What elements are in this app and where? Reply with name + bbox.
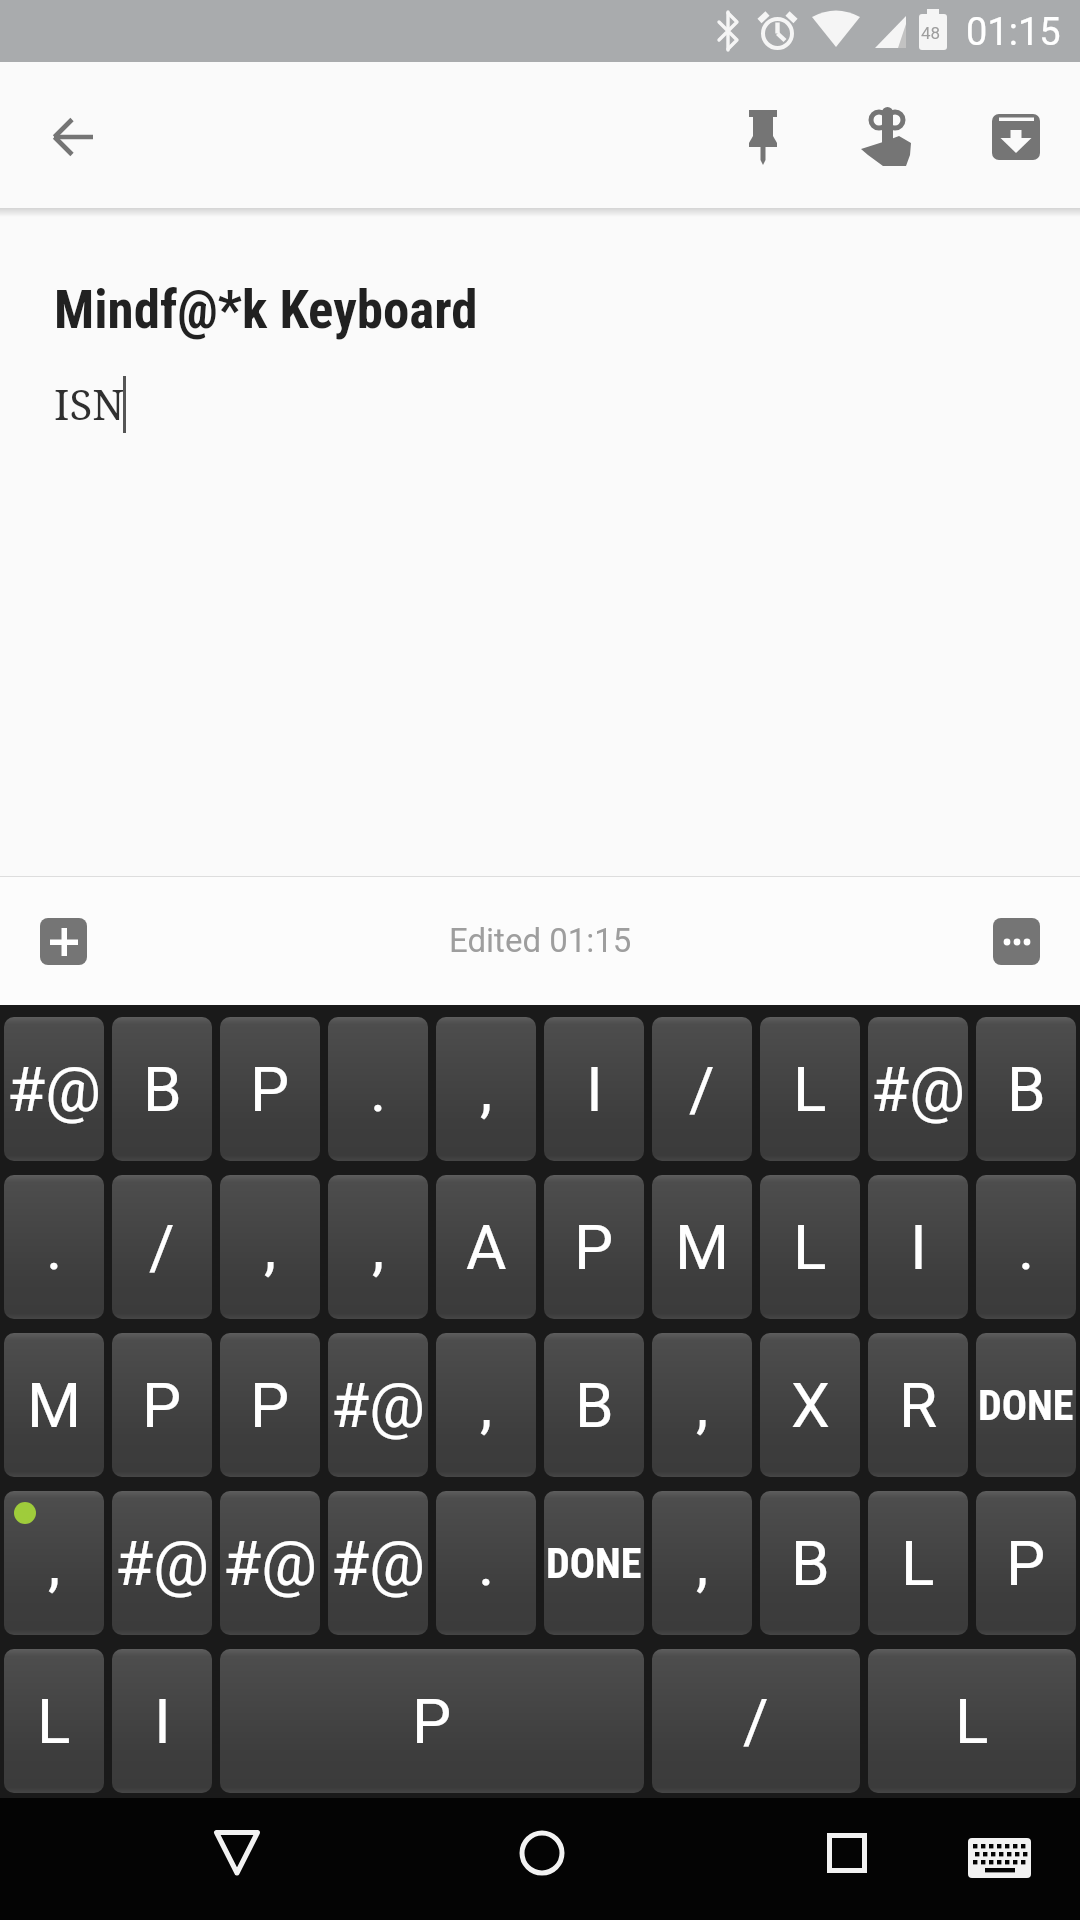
staticText: ,	[696, 1369, 709, 1442]
staticText: P	[574, 1211, 614, 1284]
button[interactable]: L	[760, 1175, 860, 1319]
staticText: L	[901, 1527, 935, 1600]
button[interactable]: P	[220, 1649, 644, 1793]
button[interactable]: L	[760, 1017, 860, 1161]
button[interactable]: ,	[652, 1333, 752, 1477]
button[interactable]: .	[4, 1175, 104, 1319]
staticText: .	[46, 1211, 63, 1284]
button[interactable]: DONE	[544, 1491, 644, 1635]
staticText: B	[1007, 1053, 1046, 1126]
staticText: #@	[7, 1053, 101, 1126]
staticText: B	[791, 1527, 830, 1600]
staticText: #@	[331, 1369, 425, 1442]
staticText: L	[793, 1211, 827, 1284]
button[interactable]: X	[760, 1333, 860, 1477]
button[interactable]	[26, 89, 122, 185]
button[interactable]: I	[544, 1017, 644, 1161]
staticText: Edited 01:15	[449, 921, 632, 960]
button[interactable]: #@	[328, 1491, 428, 1635]
staticText: .	[478, 1527, 495, 1600]
staticText: P	[142, 1369, 182, 1442]
button[interactable]: P	[220, 1333, 320, 1477]
staticText: B	[575, 1369, 614, 1442]
button[interactable]: P	[976, 1491, 1076, 1635]
button[interactable]: ,	[436, 1333, 536, 1477]
button[interactable]: .	[976, 1175, 1076, 1319]
staticText: 48	[921, 23, 941, 43]
staticText: B	[143, 1053, 182, 1126]
button[interactable]: #@	[220, 1491, 320, 1635]
button[interactable]: P	[220, 1017, 320, 1161]
button[interactable]: ,	[436, 1017, 536, 1161]
button[interactable]: #@	[868, 1017, 968, 1161]
staticText: Mindf@*k Keyboard	[54, 279, 478, 341]
button[interactable]: I	[112, 1649, 212, 1793]
staticText: ,	[48, 1527, 61, 1600]
button[interactable]: #@	[328, 1333, 428, 1477]
staticText: DONE	[546, 1539, 642, 1588]
button[interactable]: M	[652, 1175, 752, 1319]
staticText: P	[1006, 1527, 1046, 1600]
button[interactable]: I	[868, 1175, 968, 1319]
staticText: I	[154, 1685, 171, 1758]
button[interactable]	[993, 918, 1040, 965]
button[interactable]: M	[4, 1333, 104, 1477]
button[interactable]: B	[976, 1017, 1076, 1161]
button[interactable]: ,	[220, 1175, 320, 1319]
button[interactable]: A	[436, 1175, 536, 1319]
staticText: #@	[115, 1527, 209, 1600]
button[interactable]	[840, 89, 936, 185]
staticText: /	[149, 1211, 175, 1284]
staticText: DONE	[978, 1381, 1074, 1430]
button[interactable]: L	[4, 1649, 104, 1793]
staticText: ,	[264, 1211, 277, 1284]
staticText: I	[586, 1053, 603, 1126]
button[interactable]: L	[868, 1649, 1076, 1793]
staticText: ,	[480, 1053, 493, 1126]
staticText: R	[899, 1369, 938, 1442]
button[interactable]: B	[760, 1491, 860, 1635]
staticText: L	[37, 1685, 71, 1758]
staticText: #@	[223, 1527, 317, 1600]
staticText: ISN	[54, 375, 125, 432]
button[interactable]	[799, 1805, 895, 1901]
button[interactable]: #@	[4, 1017, 104, 1161]
button[interactable]: L	[868, 1491, 968, 1635]
button[interactable]	[40, 918, 87, 965]
button[interactable]: ,	[652, 1491, 752, 1635]
staticText: ,	[696, 1527, 709, 1600]
button[interactable]	[952, 1810, 1048, 1906]
staticText: /	[743, 1685, 769, 1758]
button[interactable]: P	[112, 1333, 212, 1477]
staticText: .	[370, 1053, 387, 1126]
button[interactable]: /	[652, 1649, 860, 1793]
button[interactable]: B	[544, 1333, 644, 1477]
staticText: M	[675, 1211, 730, 1284]
button[interactable]: .	[436, 1491, 536, 1635]
staticText: .	[1018, 1211, 1035, 1284]
staticText: L	[955, 1685, 989, 1758]
button[interactable]: ,	[4, 1491, 104, 1635]
button[interactable]	[189, 1805, 285, 1901]
button[interactable]	[968, 89, 1064, 185]
staticText: P	[250, 1053, 290, 1126]
button[interactable]: .	[328, 1017, 428, 1161]
staticText: ,	[372, 1211, 385, 1284]
staticText: P	[250, 1369, 290, 1442]
button[interactable]: /	[652, 1017, 752, 1161]
staticText: L	[793, 1053, 827, 1126]
button[interactable]: B	[112, 1017, 212, 1161]
staticText: M	[27, 1369, 82, 1442]
button[interactable]: #@	[112, 1491, 212, 1635]
button[interactable]: P	[544, 1175, 644, 1319]
staticText: I	[910, 1211, 927, 1284]
button[interactable]: /	[112, 1175, 212, 1319]
button[interactable]	[494, 1805, 590, 1901]
staticText: P	[412, 1685, 452, 1758]
staticText: X	[791, 1369, 830, 1442]
button[interactable]: DONE	[976, 1333, 1076, 1477]
button[interactable]: ,	[328, 1175, 428, 1319]
button[interactable]	[715, 89, 811, 185]
button[interactable]: R	[868, 1333, 968, 1477]
staticText: ,	[480, 1369, 493, 1442]
